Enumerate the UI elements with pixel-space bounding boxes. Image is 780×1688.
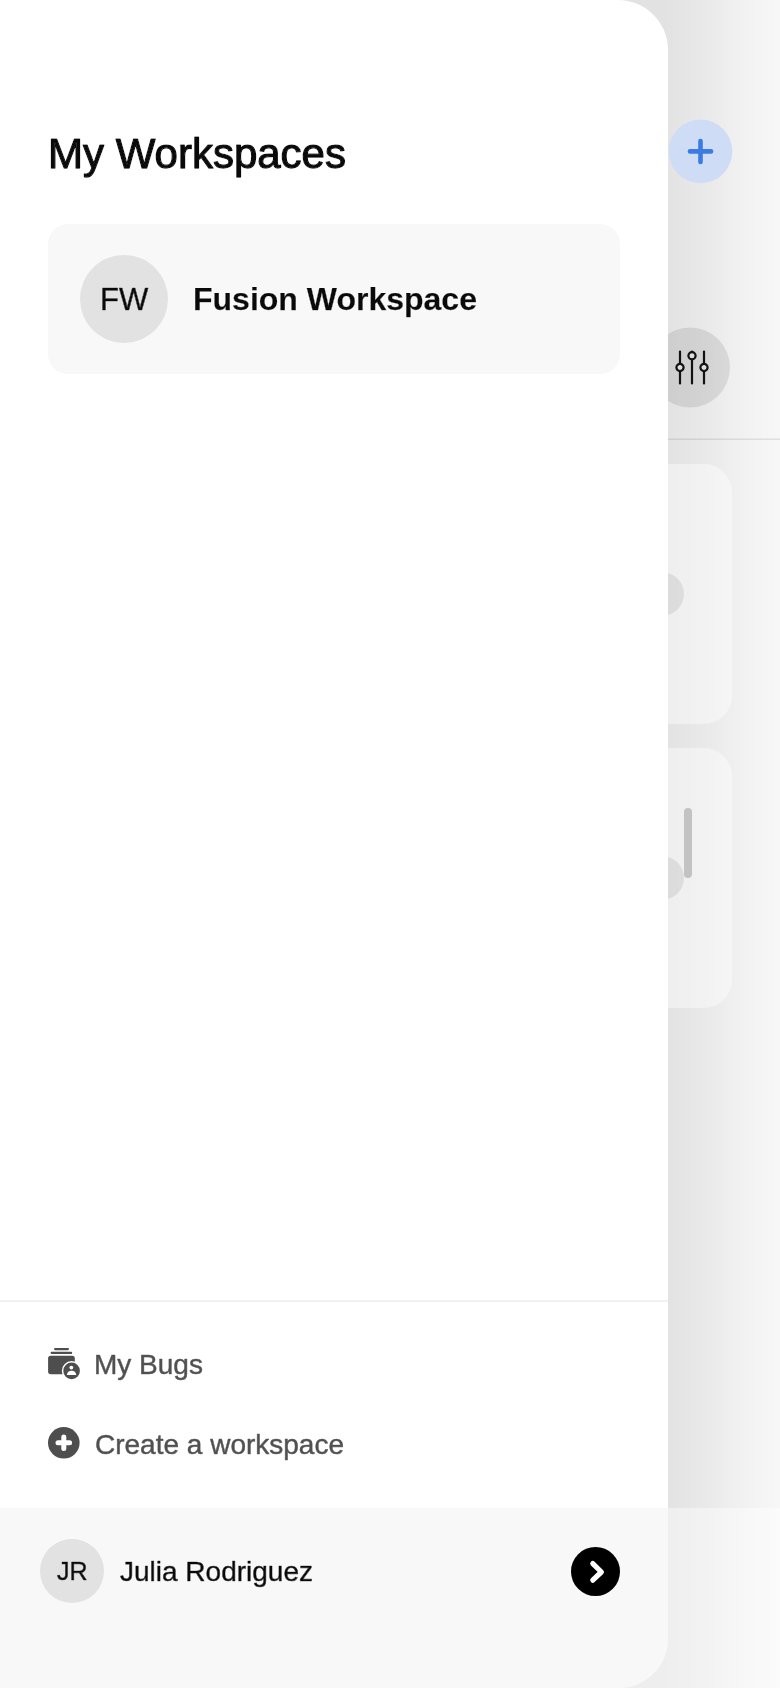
button[interactable]: Account settings (571, 1547, 620, 1596)
button[interactable]: My Bugs (0, 1324, 668, 1404)
staticText: FW (100, 282, 149, 317)
staticText: My Workspaces (48, 130, 346, 177)
staticText: JR (57, 1557, 88, 1585)
staticText: Create a workspace (95, 1429, 345, 1460)
staticText: My Workspaces (48, 130, 346, 177)
staticText: Fusion Workspace (193, 281, 477, 317)
button[interactable]: FW (48, 224, 620, 374)
staticText: JR (57, 1557, 88, 1585)
staticText: Julia Rodriguez (120, 1556, 313, 1587)
button[interactable]: Create a workspace (0, 1404, 668, 1484)
staticText: My Bugs (94, 1349, 203, 1380)
staticText: FW (100, 282, 149, 317)
staticText: Julia Rodriguez (120, 1556, 313, 1587)
staticText: Create a workspace (95, 1429, 345, 1460)
staticText: My Bugs (94, 1349, 203, 1380)
staticText: Fusion Workspace (193, 281, 477, 317)
